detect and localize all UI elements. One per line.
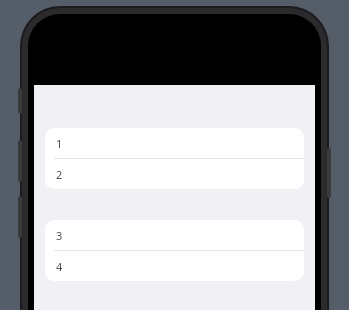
staticText: 3 [56,228,63,243]
button[interactable]: 2 [45,159,304,189]
button[interactable]: 4 [45,251,304,281]
staticText: 4 [56,259,63,274]
staticText: 1 [56,136,63,151]
button[interactable]: 3 [45,220,304,250]
staticText: 2 [56,167,63,182]
button[interactable]: 1 [45,128,304,158]
